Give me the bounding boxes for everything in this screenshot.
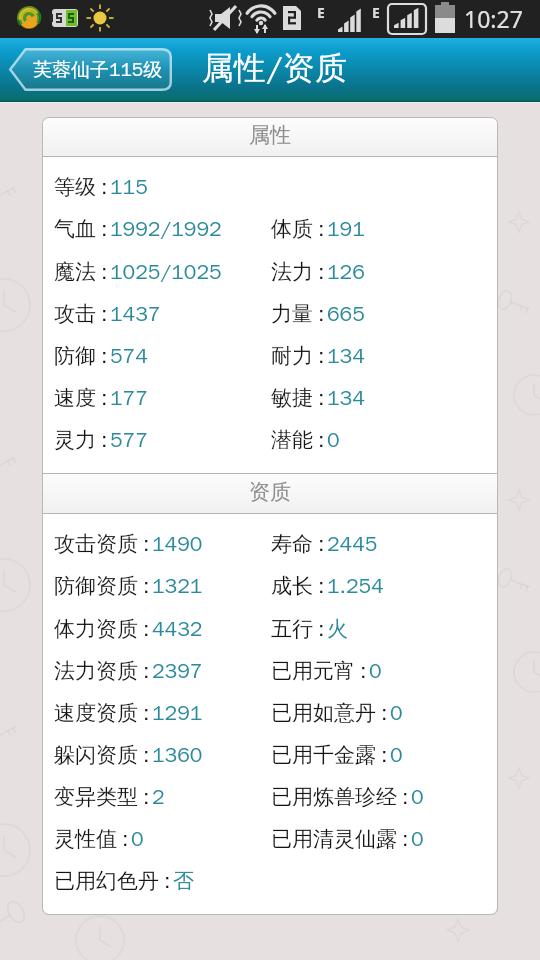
staticText: 已用清灵仙露 [271,826,397,852]
staticText: : [318,259,325,285]
staticText: 134 [327,385,365,411]
staticText: 2397 [152,658,203,684]
staticText: : [143,616,150,642]
staticText: 已用千金露 [271,742,376,768]
staticText: 气血 [54,216,96,242]
staticText: 敏捷 [271,385,313,411]
staticText: : [318,427,325,453]
button[interactable]: 返回 芙蓉仙子115级 [9,48,172,91]
staticText: 已用如意丹 [271,700,376,726]
staticText: : [101,427,108,453]
staticText: 灵性值 [54,826,117,852]
staticText: : [402,826,409,852]
staticText: 寿命 [271,531,313,557]
staticText: : [101,216,108,242]
staticText: : [101,259,108,285]
staticText: : [318,573,325,599]
staticText: 耐力 [271,343,313,369]
staticText: 1992/1992 [110,216,222,242]
staticText: : [143,784,150,810]
staticText: 速度资质 [54,700,138,726]
staticText: 潜能 [271,427,313,453]
staticText: 126 [327,259,365,285]
staticText: : [101,343,108,369]
staticText: : [318,531,325,557]
staticText: 力量 [271,301,313,327]
staticText: 成长 [271,573,313,599]
staticText: 2445 [327,531,378,557]
staticText: 变异类型 [54,784,138,810]
staticText: 已用元宵 [271,658,355,684]
staticText: 攻击资质 [54,531,138,557]
staticText: 0 [131,826,144,852]
staticText: 0 [390,700,403,726]
staticText: : [360,658,367,684]
staticText: 等级 [54,174,96,200]
staticText: 防御资质 [54,573,138,599]
staticText: E [317,3,325,22]
staticText: 1291 [152,700,203,726]
staticText: 574 [110,343,148,369]
staticText: 资质 [249,479,291,505]
staticText: 0 [411,826,424,852]
staticText: 2 [152,784,165,810]
staticText: : [101,385,108,411]
staticText: 1.254 [327,573,384,599]
staticText: : [318,343,325,369]
staticText: : [164,868,171,894]
staticText: 0 [390,742,403,768]
staticText: : [143,573,150,599]
staticText: 0 [411,784,424,810]
staticText: : [318,301,325,327]
staticText: : [381,700,388,726]
staticText: 灵力 [54,427,96,453]
staticText: 体力资质 [54,616,138,642]
staticText: : [122,826,129,852]
staticText: 1437 [110,301,161,327]
staticText: 1490 [152,531,203,557]
staticText: 速度 [54,385,96,411]
staticText: : [143,742,150,768]
staticText: : [143,700,150,726]
staticText: : [143,658,150,684]
staticText: 法力资质 [54,658,138,684]
staticText: 已用幻色丹 [54,868,159,894]
staticText: 4432 [152,616,203,642]
staticText: 防御 [54,343,96,369]
staticText: 否 [173,868,194,894]
staticText: 体质 [271,216,313,242]
staticText: 0 [369,658,382,684]
staticText: 177 [110,385,148,411]
staticText: 1321 [152,573,203,599]
staticText: 191 [327,216,365,242]
staticText: : [381,742,388,768]
staticText: 攻击 [54,301,96,327]
staticText: 0 [327,427,340,453]
staticText: : [402,784,409,810]
staticText: : [101,301,108,327]
staticText: E [372,3,380,22]
staticText: 134 [327,343,365,369]
staticText: : [101,174,108,200]
staticText: 五行 [271,616,313,642]
staticText: 1360 [152,742,203,768]
staticText: 已用炼兽珍经 [271,784,397,810]
staticText: : [143,531,150,557]
staticText: : [318,385,325,411]
staticText: 665 [327,301,365,327]
staticText: 10:27 [464,3,523,34]
staticText: 属性 [249,122,291,148]
staticText: 魔法 [54,259,96,285]
staticText: 1025/1025 [110,259,222,285]
staticText: 芙蓉仙子115级 [33,58,163,82]
staticText: 属性/资质 [202,48,347,88]
staticText: 躲闪资质 [54,742,138,768]
staticText: 火 [327,616,348,642]
staticText: : [318,216,325,242]
staticText: : [318,616,325,642]
staticText: 577 [110,427,148,453]
staticText: 115 [110,174,148,200]
staticText: 法力 [271,259,313,285]
